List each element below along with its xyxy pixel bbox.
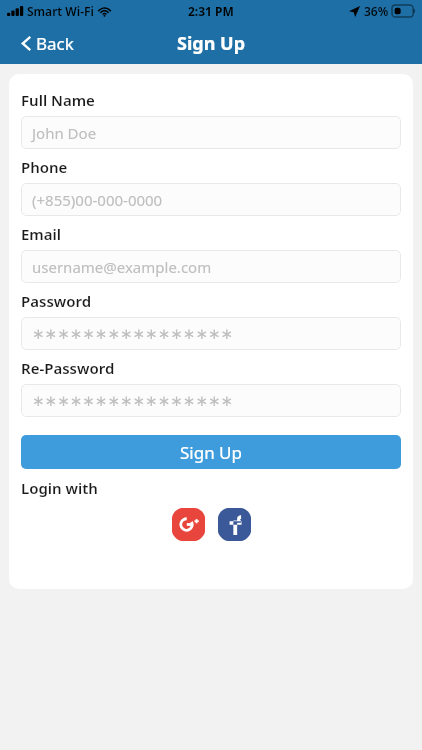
button[interactable]: ∗∗∗∗∗∗∗∗∗∗∗∗∗∗∗∗	[21, 317, 401, 350]
staticText: Password	[21, 291, 92, 311]
staticText: username@example.com	[32, 257, 212, 277]
button[interactable]: (+855)00-000-0000	[21, 183, 401, 216]
staticText: (+855)00-000-0000	[32, 190, 163, 210]
staticText: Smart Wi-Fi	[27, 3, 94, 19]
staticText: Sign Up	[180, 441, 242, 464]
button[interactable]: username@example.com	[21, 250, 401, 283]
staticText: 36%	[364, 3, 389, 19]
button[interactable]: Sign up with Facebook	[218, 508, 251, 541]
button[interactable]: Back	[0, 26, 88, 61]
staticText: ∗∗∗∗∗∗∗∗∗∗∗∗∗∗∗∗	[32, 392, 234, 409]
staticText: John Doe	[32, 123, 97, 143]
staticText: Email	[21, 224, 62, 244]
staticText: Login with	[21, 478, 98, 498]
staticText: Phone	[21, 157, 68, 177]
staticText: Back	[36, 32, 74, 55]
staticText: Re-Password	[21, 358, 115, 378]
staticText: Full Name	[21, 90, 95, 110]
button[interactable]: Sign up with Google	[172, 508, 205, 541]
button[interactable]: ∗∗∗∗∗∗∗∗∗∗∗∗∗∗∗∗	[21, 384, 401, 417]
staticText: 2:31 PM	[188, 3, 234, 19]
staticText: ∗∗∗∗∗∗∗∗∗∗∗∗∗∗∗∗	[32, 325, 234, 342]
staticText: Sign Up	[177, 31, 246, 56]
button[interactable]: John Doe	[21, 116, 401, 149]
button[interactable]: Sign Up	[21, 435, 401, 469]
